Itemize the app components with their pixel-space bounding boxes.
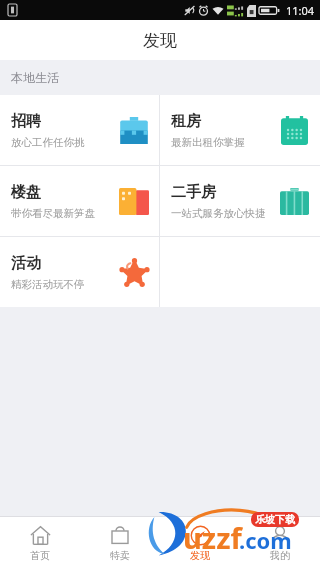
staticText: 发现 <box>143 30 177 51</box>
staticText: 放心工作任你挑 <box>11 136 85 149</box>
staticText: 精彩活动玩不停 <box>11 278 85 291</box>
staticText: 首页 <box>30 549 50 562</box>
staticText: 特卖 <box>110 549 130 562</box>
button[interactable]: 首页 <box>0 517 80 569</box>
staticText: 带你看尽最新笋盘 <box>11 207 95 220</box>
staticText: 发现 <box>190 549 210 562</box>
staticText: 活动 <box>11 254 41 273</box>
button[interactable]: 特卖 <box>80 517 160 569</box>
other: 发现 <box>190 525 211 546</box>
staticText: uzzf <box>183 518 242 557</box>
staticText: 二手房 <box>171 183 216 202</box>
staticText: 租房 <box>171 112 201 131</box>
button[interactable]: 招聘 <box>0 95 160 165</box>
button[interactable]: 我的 <box>240 517 320 569</box>
button[interactable]: 楼盘 <box>0 166 160 236</box>
staticText: 本地生活 <box>11 70 59 85</box>
staticText: 招聘 <box>11 112 41 131</box>
staticText: 11:04 <box>286 3 315 18</box>
staticText: .com <box>239 525 292 555</box>
staticText: 最新出租你掌握 <box>171 136 245 149</box>
staticText: 一站式服务放心快捷 <box>171 207 266 220</box>
button[interactable]: 活动 <box>0 237 160 307</box>
staticText: 乐坡下载 <box>255 513 295 526</box>
staticText: 我的 <box>270 549 290 562</box>
staticText: 楼盘 <box>11 183 41 202</box>
button[interactable]: 租房 <box>160 95 320 165</box>
button[interactable]: 发现 <box>160 517 240 569</box>
button[interactable]: 二手房 <box>160 166 320 236</box>
